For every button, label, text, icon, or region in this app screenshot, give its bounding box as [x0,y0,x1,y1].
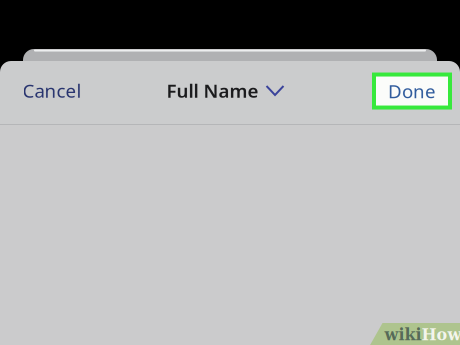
button[interactable]: Cancel [15,73,89,107]
staticText: How [421,325,460,344]
staticText: wiki [384,325,421,344]
staticText: Done [388,79,436,103]
staticText: Full Name [166,78,258,103]
button[interactable]: Full Name [160,73,290,107]
staticText: Cancel [22,78,81,103]
button[interactable]: Done [372,72,452,109]
